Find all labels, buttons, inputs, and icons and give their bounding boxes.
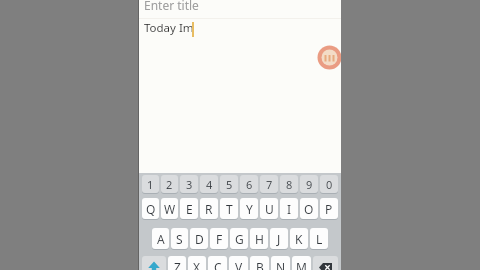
staticText: Enter title <box>144 0 199 13</box>
staticText: Y <box>246 201 253 217</box>
button[interactable]: Q <box>142 198 159 220</box>
button[interactable]: K <box>290 228 308 250</box>
staticText: D <box>195 231 204 247</box>
button[interactable]: 5 <box>220 175 238 194</box>
button[interactable]: 7 <box>260 175 278 194</box>
button[interactable] <box>313 256 338 270</box>
staticText: B <box>256 259 264 270</box>
staticText: C <box>214 259 222 270</box>
staticText: 8 <box>286 177 293 192</box>
staticText: I <box>287 201 292 217</box>
staticText: P <box>325 201 333 217</box>
staticText: L <box>316 231 323 247</box>
button[interactable]: F <box>210 228 228 250</box>
staticText: Z <box>174 259 181 270</box>
button[interactable]: 3 <box>180 175 198 194</box>
button[interactable]: C <box>208 256 227 270</box>
staticText: R <box>205 201 213 217</box>
staticText: A <box>157 231 165 247</box>
button[interactable]: 2 <box>161 175 178 194</box>
staticText: 9 <box>306 177 313 192</box>
button[interactable]: V <box>229 256 248 270</box>
staticText: 3 <box>186 177 193 192</box>
button[interactable]: E <box>180 198 198 220</box>
staticText: V <box>235 259 243 270</box>
staticText: K <box>295 231 303 247</box>
button[interactable]: Z <box>168 256 186 270</box>
button[interactable]: W <box>161 198 178 220</box>
button[interactable]: M <box>292 256 311 270</box>
staticText: T <box>226 201 233 217</box>
staticText: X <box>193 259 201 270</box>
button[interactable]: N <box>271 256 290 270</box>
staticText: 2 <box>166 177 173 192</box>
button[interactable]: R <box>200 198 218 220</box>
button[interactable]: 6 <box>240 175 258 194</box>
button[interactable]: T <box>220 198 238 220</box>
button[interactable]: Enter title <box>139 0 341 17</box>
button[interactable]: P <box>320 198 338 220</box>
staticText: 1 <box>147 177 154 192</box>
staticText: E <box>186 201 193 217</box>
button[interactable]: X <box>188 256 206 270</box>
staticText: N <box>276 259 286 270</box>
staticText: W <box>164 201 176 217</box>
button[interactable]: D <box>190 228 208 250</box>
staticText: Q <box>146 201 156 217</box>
button[interactable]: S <box>171 228 188 250</box>
button[interactable]: I <box>280 198 298 220</box>
button[interactable]: 0 <box>320 175 338 194</box>
button[interactable]: 1 <box>142 175 159 194</box>
staticText: U <box>265 201 274 217</box>
staticText: 6 <box>246 177 253 192</box>
button[interactable]: 9 <box>300 175 318 194</box>
staticText: 0 <box>326 177 333 192</box>
button[interactable]: Y <box>240 198 258 220</box>
button[interactable]: J <box>270 228 288 250</box>
staticText: O <box>304 201 314 217</box>
button[interactable]: L <box>310 228 328 250</box>
button[interactable]: G <box>230 228 248 250</box>
button[interactable]: B <box>250 256 269 270</box>
button[interactable]: O <box>300 198 318 220</box>
button[interactable] <box>142 256 166 270</box>
staticText: G <box>235 231 244 247</box>
button[interactable]: 4 <box>200 175 218 194</box>
button[interactable]: U <box>260 198 278 220</box>
staticText: J <box>277 231 281 247</box>
staticText: H <box>255 231 264 247</box>
staticText: 4 <box>206 177 213 192</box>
staticText: M <box>296 259 307 270</box>
button[interactable]: 8 <box>280 175 298 194</box>
staticText: Today Im <box>144 20 194 36</box>
staticText: F <box>216 231 223 247</box>
staticText: 7 <box>266 177 273 192</box>
staticText: S <box>176 231 183 247</box>
staticText: 5 <box>226 177 233 192</box>
button[interactable]: H <box>250 228 268 250</box>
button[interactable]: Today Im <box>139 19 341 37</box>
button[interactable]: A <box>152 228 169 250</box>
